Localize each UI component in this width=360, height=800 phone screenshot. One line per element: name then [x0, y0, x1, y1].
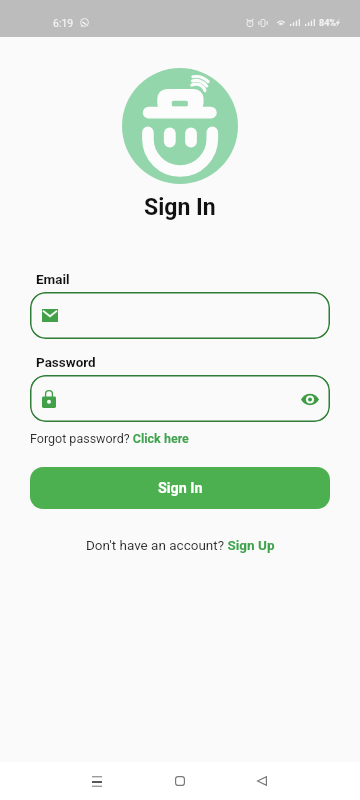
button[interactable]: Sign In [30, 467, 330, 509]
button[interactable]: Password field [30, 375, 330, 422]
button[interactable]: Email field [30, 292, 330, 339]
button[interactable]: Back [242, 762, 282, 800]
button[interactable]: Home [160, 762, 200, 800]
staticText: Sign In [158, 480, 203, 497]
staticText: 84% [319, 18, 336, 29]
button[interactable]: Show password [298, 387, 322, 411]
other: App logo [122, 68, 238, 184]
button[interactable]: Recent apps [77, 762, 117, 800]
staticText: Email [36, 271, 70, 287]
staticText: 6:19 [53, 17, 74, 29]
staticText: Don't have an account? Sign Up [86, 537, 275, 553]
button[interactable]: Forgot password? Click here [30, 431, 189, 446]
staticText: Sign In [144, 194, 216, 221]
button[interactable]: Don't have an account? Sign Up [86, 537, 275, 553]
staticText: Forgot password? Click here [30, 431, 189, 446]
staticText: Password [36, 354, 96, 370]
